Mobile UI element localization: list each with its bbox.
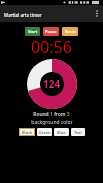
button[interactable]: Pause — [43, 27, 59, 36]
staticText: Reset — [65, 29, 76, 34]
staticText: Round 1 from 3 — [33, 111, 70, 118]
button[interactable]: Start — [25, 27, 40, 36]
staticText: Black — [22, 130, 33, 135]
button[interactable]: Reset — [62, 27, 78, 36]
staticText: Green — [39, 130, 51, 135]
staticText: 00:56 — [31, 36, 72, 58]
staticText: 124 — [43, 77, 61, 91]
staticText: Teal — [74, 130, 82, 135]
button[interactable]: Blue — [54, 128, 69, 136]
staticText: Martial arts timer — [4, 12, 42, 18]
staticText: Blue — [57, 130, 66, 135]
staticText: Pause — [45, 29, 57, 34]
button[interactable]: Green — [37, 128, 52, 136]
staticText: Start — [28, 29, 38, 34]
staticText: background color — [31, 119, 73, 126]
button[interactable]: Black — [19, 128, 35, 136]
button[interactable]: More options — [91, 5, 103, 22]
button[interactable]: Teal — [71, 128, 85, 136]
